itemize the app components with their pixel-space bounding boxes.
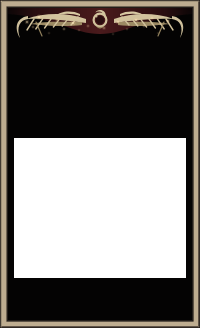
button[interactable]: Ornate framed panel — [0, 0, 200, 328]
